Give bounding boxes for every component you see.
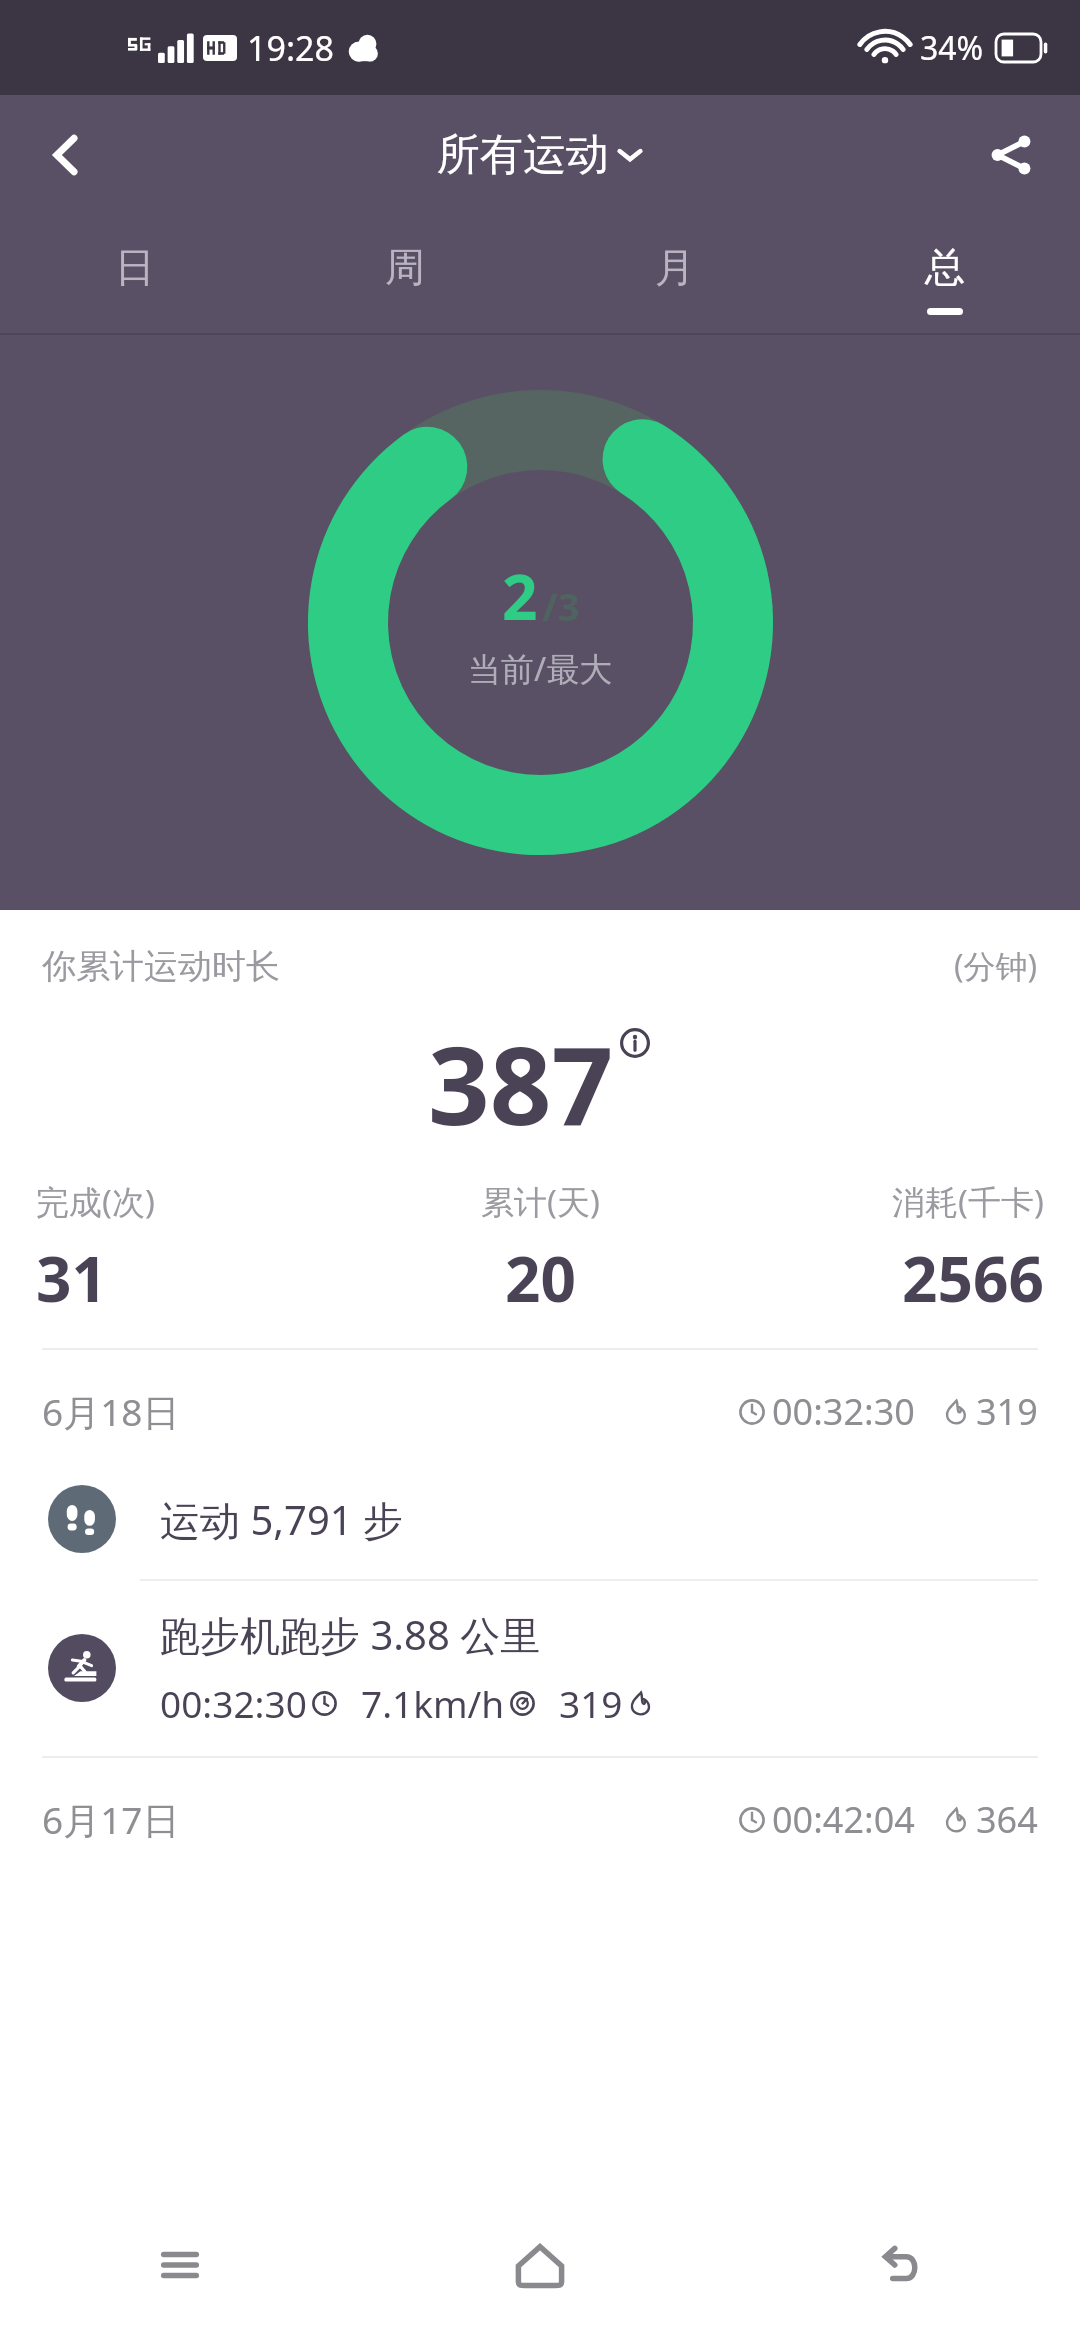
staticText: 消耗(千卡) bbox=[892, 1179, 1044, 1224]
staticText: 你累计运动时长 bbox=[42, 945, 280, 988]
button[interactable]: Home bbox=[360, 2190, 720, 2340]
button[interactable]: 完成(次) bbox=[36, 1179, 372, 1320]
staticText: 7.1km/h bbox=[361, 1678, 505, 1728]
staticText: 所有运动 bbox=[437, 128, 609, 182]
staticText: 周 bbox=[385, 242, 425, 292]
staticText: 跑步机跑步 3.88 公里 bbox=[160, 1607, 541, 1662]
staticText: 00:42:04 bbox=[772, 1795, 915, 1844]
staticText: /3 bbox=[542, 580, 580, 632]
button[interactable]: 所有运动 bbox=[427, 122, 653, 188]
staticText: 完成(次) bbox=[36, 1179, 155, 1224]
button[interactable]: 跑步机跑步 3.88 公里 bbox=[0, 1581, 1080, 1756]
button[interactable]: Share bbox=[966, 110, 1056, 200]
staticText: 运动 5,791 步 bbox=[160, 1492, 404, 1547]
staticText: 总 bbox=[925, 242, 965, 292]
staticText: 日 bbox=[115, 242, 155, 292]
button[interactable]: 累计(天) bbox=[372, 1179, 708, 1320]
staticText: 6月17日 bbox=[42, 1794, 180, 1845]
staticText: 387 bbox=[428, 1010, 614, 1157]
staticText: 319 bbox=[559, 1678, 623, 1728]
staticText: 累计(天) bbox=[481, 1179, 600, 1224]
staticText: 6月18日 bbox=[42, 1386, 180, 1437]
staticText: 00:32:30 bbox=[160, 1678, 307, 1728]
button[interactable]: 消耗(千卡) bbox=[708, 1179, 1044, 1320]
button[interactable]: 月 bbox=[540, 215, 810, 335]
staticText: 364 bbox=[976, 1795, 1038, 1844]
staticText: (分钟) bbox=[954, 944, 1038, 988]
button[interactable]: Back bbox=[720, 2190, 1080, 2340]
staticText: 2 bbox=[502, 554, 538, 638]
staticText: 00:32:30 bbox=[772, 1387, 915, 1436]
staticText: 20 bbox=[505, 1236, 576, 1320]
button[interactable]: 周 bbox=[270, 215, 540, 335]
staticText: 2566 bbox=[902, 1236, 1044, 1320]
button[interactable]: Info bbox=[618, 1026, 652, 1060]
staticText: 34% bbox=[920, 26, 984, 70]
staticText: 319 bbox=[976, 1387, 1038, 1436]
button[interactable]: Back bbox=[22, 110, 112, 200]
staticText: 31 bbox=[36, 1236, 107, 1320]
button[interactable]: 总 bbox=[810, 215, 1080, 335]
button[interactable]: 6月18日 bbox=[0, 1350, 1080, 1465]
button[interactable]: 6月17日 bbox=[0, 1758, 1080, 1873]
staticText: 月 bbox=[655, 242, 695, 292]
button[interactable]: 运动 5,791 步 bbox=[0, 1465, 1080, 1579]
button[interactable]: Recents bbox=[0, 2190, 360, 2340]
staticText: 19:28 bbox=[247, 25, 334, 71]
button[interactable]: 日 bbox=[0, 215, 270, 335]
staticText: 当前/最大 bbox=[468, 646, 613, 691]
